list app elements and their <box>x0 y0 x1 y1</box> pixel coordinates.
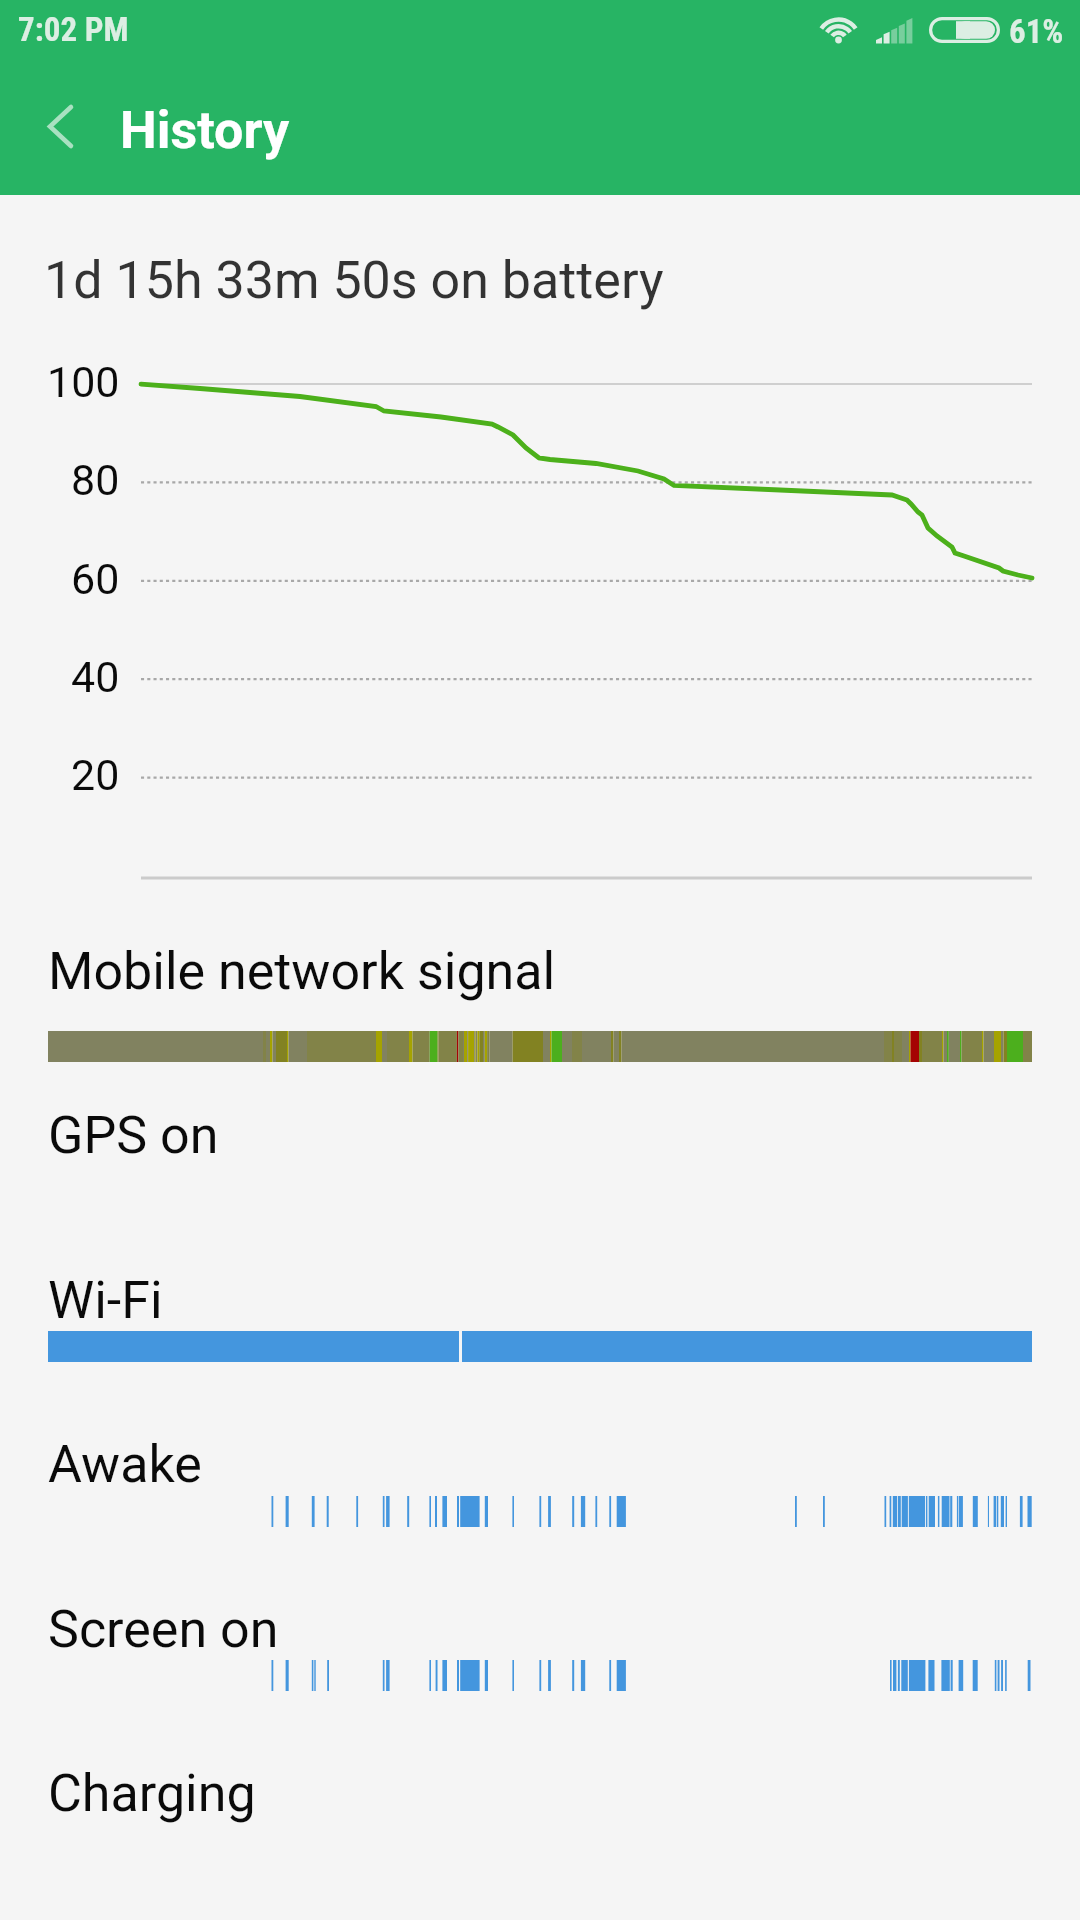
staticText: 60 <box>71 554 120 604</box>
staticText: Mobile network signal <box>48 941 556 1002</box>
button[interactable]: Mobile network signal <box>0 933 1080 1081</box>
staticText: Charging <box>48 1763 256 1824</box>
staticText: 61% <box>1009 12 1064 51</box>
button[interactable]: Back <box>14 62 110 195</box>
staticText: Awake <box>48 1434 202 1495</box>
staticText: 7:02 PM <box>18 10 129 49</box>
button[interactable]: GPS on <box>0 1097 1080 1245</box>
staticText: 80 <box>71 455 120 505</box>
staticText: 20 <box>71 750 120 800</box>
button[interactable]: Wi-Fi <box>0 1262 1080 1410</box>
staticText: Screen on <box>48 1599 279 1660</box>
button[interactable]: Screen on <box>0 1591 1080 1739</box>
staticText: 100 <box>47 357 120 407</box>
button[interactable]: Charging <box>0 1755 1080 1903</box>
staticText: Wi-Fi <box>48 1270 163 1331</box>
button[interactable]: Awake <box>0 1426 1080 1574</box>
staticText: GPS on <box>48 1105 219 1166</box>
staticText: 1d 15h 33m 50s on battery <box>44 250 664 311</box>
staticText: 40 <box>71 652 120 702</box>
staticText: History <box>120 100 290 161</box>
